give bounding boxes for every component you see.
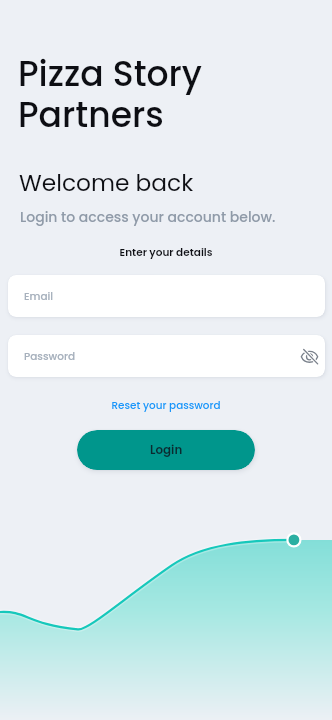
button[interactable]: Show password (295, 342, 323, 370)
staticText: Login to access your account below. (20, 207, 276, 227)
staticText: Enter your details (0, 245, 332, 260)
button[interactable]: Reset your password (0, 398, 332, 413)
staticText: Email (24, 289, 54, 304)
button[interactable]: Password (8, 335, 325, 377)
staticText: Password (24, 349, 76, 364)
staticText: Login (150, 442, 183, 459)
button[interactable]: Email (8, 275, 325, 317)
staticText: Pizza Story Partners (18, 50, 203, 140)
staticText: Welcome back (19, 167, 194, 200)
button[interactable]: Login (77, 430, 255, 470)
